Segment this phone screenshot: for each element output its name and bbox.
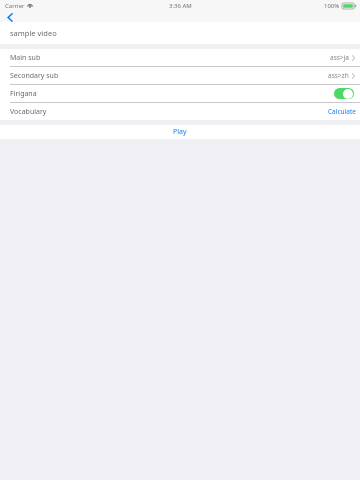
button[interactable]: Back	[0, 12, 20, 22]
staticText: sample video	[10, 28, 57, 38]
staticText: Firigana	[10, 89, 37, 99]
staticText: Play	[173, 127, 187, 137]
button[interactable]: Play	[0, 125, 360, 139]
staticText: Secondary sub	[10, 71, 59, 81]
button[interactable]: sample video	[0, 22, 360, 44]
button[interactable]: Main sub	[0, 49, 360, 66]
staticText: 3:36 AM	[169, 2, 192, 10]
button[interactable]: Firigana toggle, on	[334, 88, 354, 99]
staticText: Calculate	[328, 107, 356, 116]
staticText: Vocabulary	[10, 107, 47, 117]
button[interactable]: Secondary sub	[0, 67, 360, 84]
button[interactable]: Vocabulary	[0, 103, 360, 120]
staticText: 100%	[324, 2, 340, 10]
staticText: ass>ja	[330, 53, 349, 62]
staticText: Main sub	[10, 53, 41, 63]
staticText: ass>zh	[328, 71, 349, 80]
staticText: Carrier	[5, 2, 25, 10]
